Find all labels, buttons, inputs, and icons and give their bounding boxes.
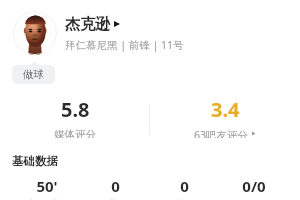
staticText: 杰克逊: [65, 15, 110, 34]
staticText: 50': [36, 176, 58, 196]
button[interactable]: 0: [81, 176, 150, 200]
staticText: 出场时间: [27, 198, 67, 200]
staticText: 进球: [106, 198, 126, 200]
button[interactable]: 杰克逊: [65, 15, 120, 34]
staticText: 3.4: [211, 96, 240, 123]
button[interactable]: 5.8: [0, 96, 149, 138]
staticText: 0/0: [242, 176, 266, 196]
button[interactable]: 50': [12, 176, 81, 200]
staticText: 做球: [23, 68, 44, 81]
staticText: 基础数据: [12, 154, 58, 168]
staticText: 0: [111, 176, 120, 196]
staticText: 拜仁慕尼黑 | 前锋 | 11号: [65, 38, 184, 52]
staticText: 5.8: [61, 96, 90, 123]
staticText: 助攻: [175, 198, 195, 200]
button[interactable]: 0: [150, 176, 219, 200]
staticText: 0: [180, 176, 189, 196]
button[interactable]: 0/0: [219, 176, 288, 200]
button[interactable]: 3.4: [150, 96, 300, 138]
staticText: 63吧友评分: [194, 128, 249, 138]
button[interactable]: 做球: [12, 65, 55, 84]
staticText: 媒体评分: [54, 128, 96, 138]
other: Player photo: [13, 11, 57, 55]
